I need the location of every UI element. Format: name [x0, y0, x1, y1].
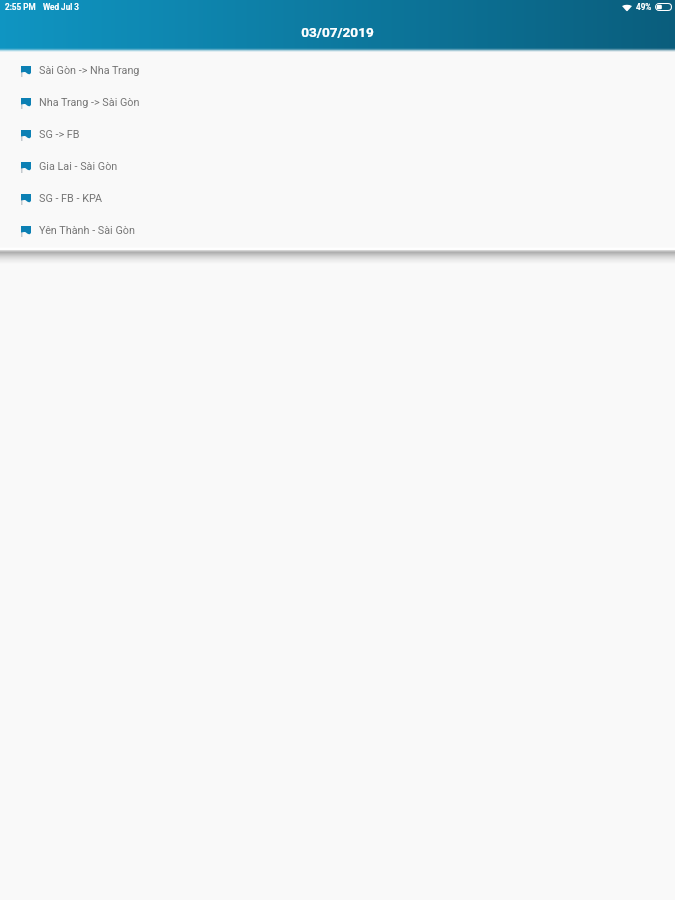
button[interactable]: Gia Lai - Sài Gòn — [0, 150, 675, 182]
staticText: Gia Lai - Sài Gòn — [39, 160, 118, 173]
staticText: 03/07/2019 — [301, 24, 374, 40]
button[interactable]: Sài Gòn -> Nha Trang — [0, 54, 675, 86]
button[interactable]: SG - FB - KPA — [0, 182, 675, 214]
staticText: SG - FB - KPA — [39, 192, 103, 205]
staticText: Wed Jul 3 — [43, 2, 79, 12]
other: Wi-Fi — [622, 4, 632, 11]
other: Battery 49 percent — [655, 3, 672, 11]
button[interactable]: SG -> FB — [0, 118, 675, 150]
staticText: SG -> FB — [39, 128, 80, 141]
button[interactable]: Yên Thành - Sài Gòn — [0, 214, 675, 246]
staticText: 49% — [636, 2, 652, 12]
staticText: Sài Gòn -> Nha Trang — [39, 64, 140, 77]
button[interactable]: Nha Trang -> Sài Gòn — [0, 86, 675, 118]
staticText: 2:55 PM — [5, 2, 36, 12]
staticText: Nha Trang -> Sài Gòn — [39, 96, 140, 109]
staticText: Yên Thành - Sài Gòn — [39, 224, 135, 237]
